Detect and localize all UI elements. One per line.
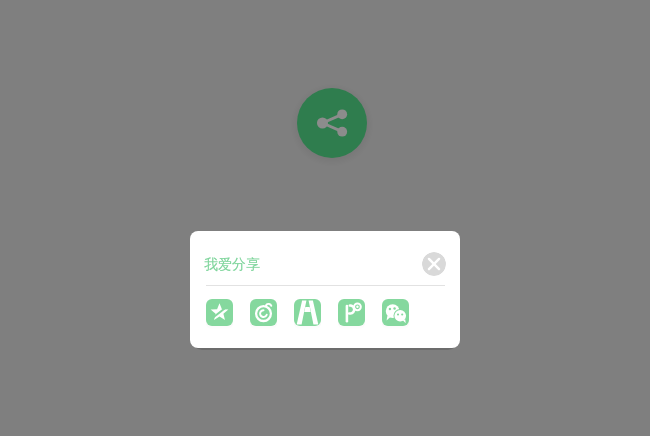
button[interactable]: Pengyou	[338, 299, 365, 326]
button[interactable]: Close	[422, 252, 446, 276]
button[interactable]: Douban	[294, 299, 321, 326]
button[interactable]: WeChat	[382, 299, 409, 326]
button[interactable]: QZone	[206, 299, 233, 326]
button[interactable]: Share	[297, 88, 367, 158]
staticText: 我爱分享	[204, 256, 260, 274]
button[interactable]: Weibo	[250, 299, 277, 326]
